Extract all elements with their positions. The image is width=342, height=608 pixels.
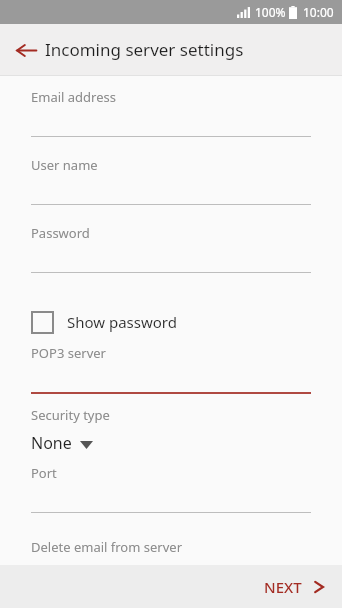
button[interactable]: User name [0,156,342,224]
button[interactable]: POP3 server [0,344,342,394]
staticText: Show password [67,312,177,332]
staticText: 10:00 [303,4,334,20]
button[interactable]: Port [0,454,342,532]
staticText: Password [31,224,90,242]
button[interactable]: Navigate up [8,32,44,68]
button[interactable]: Delete email from server [0,538,342,586]
button[interactable]: Show password [0,300,342,344]
staticText: Security type [31,406,110,424]
button[interactable]: NEXT [171,565,342,608]
staticText: Port [31,464,57,482]
staticText: NEXT [264,577,302,597]
staticText: Incoming server settings [45,38,244,61]
staticText: None [31,432,72,454]
staticText: Delete email from server [31,538,182,556]
staticText: Email address [31,88,116,106]
staticText: User name [31,156,98,174]
button[interactable]: Email address [0,76,342,156]
staticText: 100% [255,4,286,20]
staticText: POP3 server [31,344,106,362]
button[interactable]: Password [0,224,342,292]
button[interactable]: Security type [0,406,342,454]
